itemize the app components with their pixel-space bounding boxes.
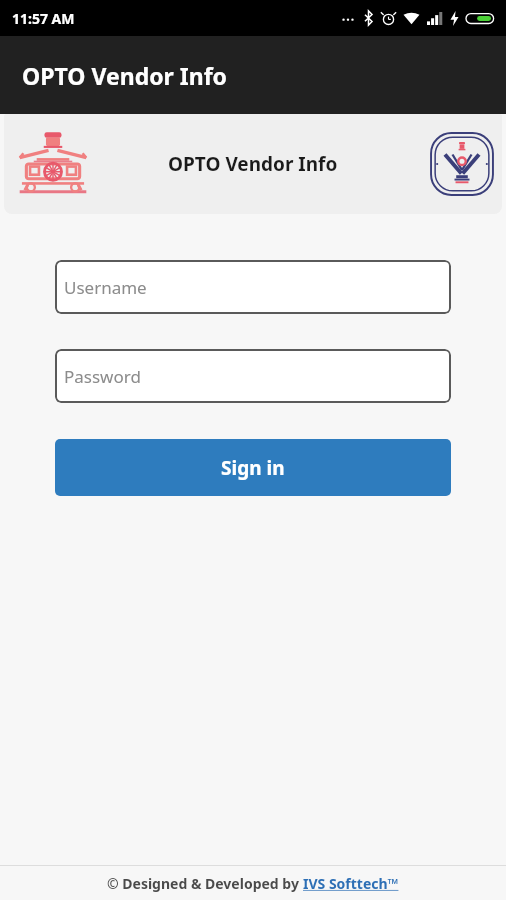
- button[interactable]: Sign in: [55, 439, 451, 496]
- staticText: OPTO Vendor Info: [22, 60, 227, 91]
- staticText: © Designed & Developed by: [107, 874, 303, 893]
- staticText: Password: [64, 365, 141, 388]
- staticText: Username: [64, 276, 147, 299]
- staticText: OPTO Vendor Info: [168, 151, 338, 177]
- staticText: IVS Softtech™: [303, 874, 399, 893]
- button[interactable]: Password: [55, 349, 451, 403]
- staticText: Sign in: [221, 455, 285, 481]
- button[interactable]: Username: [55, 260, 451, 314]
- button[interactable]: IVS Softtech™: [303, 874, 399, 893]
- staticText: 11:57 AM: [12, 9, 75, 28]
